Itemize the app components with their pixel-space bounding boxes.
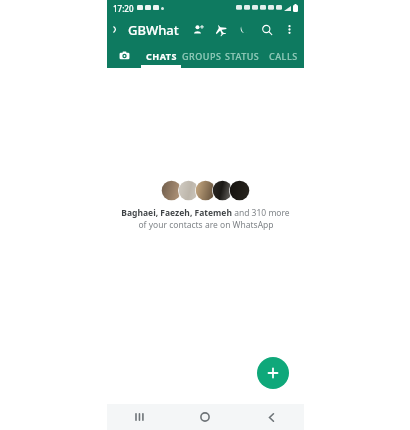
button[interactable]: Home bbox=[172, 404, 238, 430]
button[interactable]: GROUPS bbox=[181, 43, 222, 68]
button[interactable]: New chat bbox=[257, 357, 289, 389]
button[interactable]: More options bbox=[278, 16, 301, 43]
staticText: GBWhat bbox=[128, 21, 179, 39]
button[interactable]: CALLS bbox=[263, 43, 304, 68]
button[interactable]: Recents bbox=[107, 404, 172, 430]
staticText: GROUPS bbox=[182, 50, 222, 62]
button[interactable]: Search bbox=[255, 16, 278, 43]
button[interactable]: Camera bbox=[107, 43, 141, 68]
button[interactable]: STATUS bbox=[222, 43, 263, 68]
staticText: of your contacts are on WhatsApp bbox=[138, 219, 274, 231]
button[interactable]: Dark mode bbox=[232, 16, 255, 43]
button[interactable]: Back bbox=[107, 16, 123, 43]
button[interactable]: CHATS bbox=[141, 43, 181, 68]
button[interactable]: Add contact bbox=[186, 16, 209, 43]
staticText: STATUS bbox=[225, 50, 260, 62]
button[interactable]: Airplane mode bbox=[209, 16, 232, 43]
staticText: Baghaei, Faezeh, Fatemeh and 310 more bbox=[121, 207, 290, 219]
button[interactable]: Back bbox=[238, 404, 304, 430]
staticText: CALLS bbox=[269, 50, 298, 62]
staticText: 17:20 bbox=[113, 3, 134, 14]
staticText: CHATS bbox=[146, 50, 177, 62]
